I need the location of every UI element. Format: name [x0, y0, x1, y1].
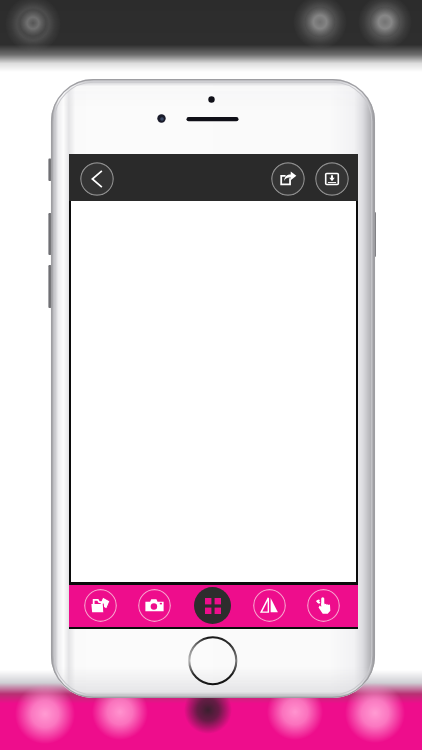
button[interactable]: Collage grid — [194, 587, 231, 624]
button[interactable]: Mirror — [253, 589, 286, 622]
button[interactable]: Share — [271, 162, 305, 196]
button[interactable]: Open gallery — [84, 589, 117, 622]
button[interactable]: Camera — [138, 589, 171, 622]
button[interactable]: Touch adjust — [307, 589, 340, 622]
button[interactable]: Back — [80, 162, 114, 196]
button[interactable]: Save — [315, 162, 349, 196]
